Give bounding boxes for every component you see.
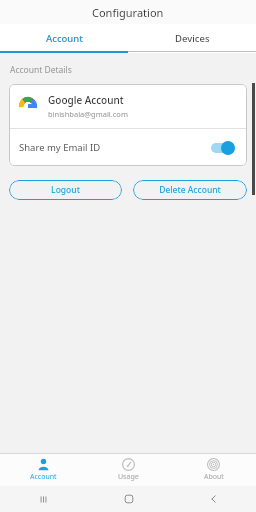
- button[interactable]: Back: [171, 486, 256, 512]
- staticText: Account: [46, 32, 83, 45]
- staticText: Usage: [118, 472, 139, 482]
- staticText: Share my Email ID: [19, 141, 211, 154]
- button[interactable]: Share my Email ID: [9, 129, 247, 166]
- button[interactable]: Recent apps: [0, 486, 86, 512]
- button[interactable]: Account: [0, 24, 128, 53]
- staticText: About: [204, 472, 224, 482]
- staticText: binishbala@gmail.com: [48, 109, 128, 119]
- button[interactable]: Share my Email ID toggle: [211, 141, 235, 155]
- button[interactable]: Account: [0, 454, 86, 486]
- staticText: Account: [30, 472, 57, 482]
- staticText: Account Details: [10, 64, 72, 76]
- button[interactable]: Google Account: [9, 84, 247, 128]
- staticText: Configuration: [92, 5, 164, 20]
- staticText: Logout: [51, 184, 80, 196]
- button[interactable]: Devices: [128, 24, 256, 53]
- staticText: Delete Account: [159, 184, 221, 196]
- staticText: Google Account: [48, 93, 124, 107]
- button[interactable]: Usage: [86, 454, 171, 486]
- button[interactable]: Home: [86, 486, 171, 512]
- button[interactable]: Delete Account: [133, 180, 247, 200]
- button[interactable]: About: [171, 454, 256, 486]
- button[interactable]: Logout: [9, 180, 122, 200]
- staticText: Devices: [175, 32, 210, 45]
